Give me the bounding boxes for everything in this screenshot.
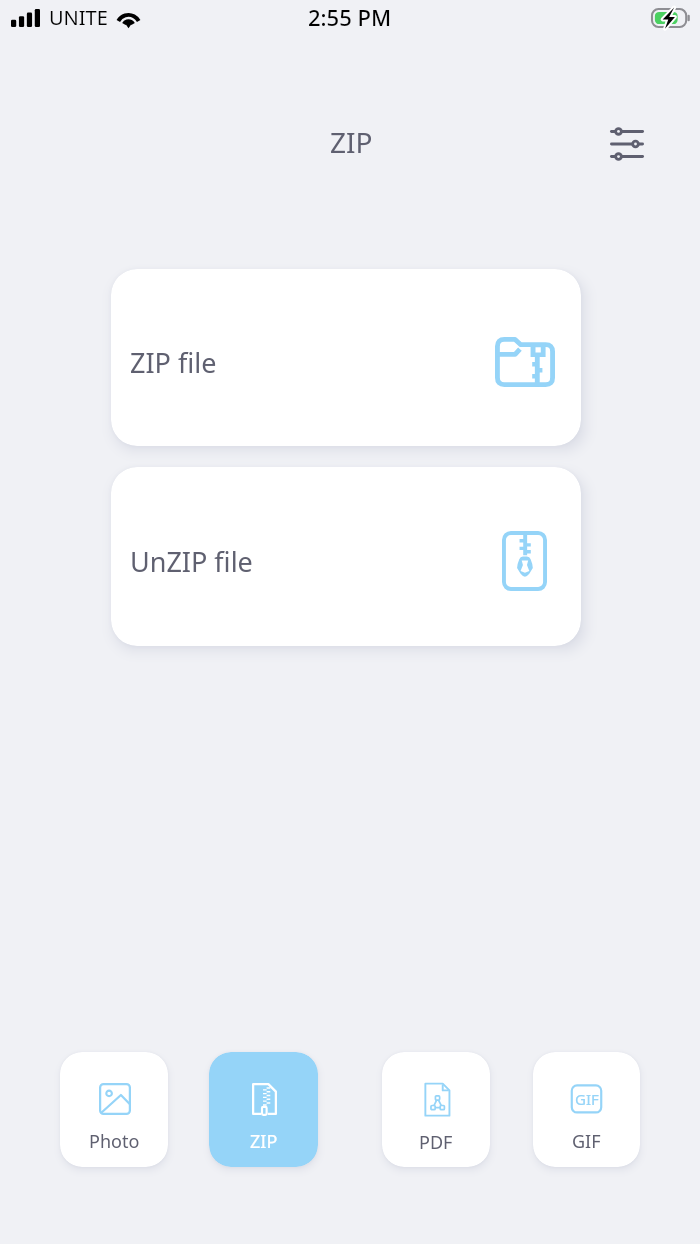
staticText: UNITE [49,4,108,31]
button[interactable]: UnZIP file [111,467,581,646]
button[interactable]: ZIP [209,1052,318,1167]
staticText: PDF [419,1130,453,1155]
staticText: ZIP [330,123,373,161]
button[interactable]: GIF [533,1052,640,1167]
staticText: Photo [89,1129,140,1154]
button[interactable]: PDF [382,1052,490,1167]
staticText: ZIP [250,1129,278,1154]
staticText: GIF [575,1089,599,1109]
button[interactable]: Photo [60,1052,168,1167]
staticText: ZIP file [130,344,217,381]
staticText: UnZIP file [130,543,253,580]
button[interactable]: Settings [604,121,650,167]
staticText: 2:55 PM [308,2,392,32]
staticText: GIF [572,1129,601,1154]
button[interactable]: ZIP file [111,269,581,446]
